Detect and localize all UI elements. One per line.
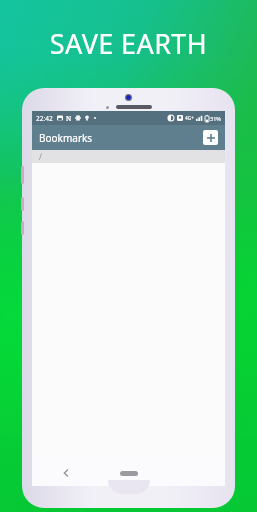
button[interactable]: Back <box>58 465 74 481</box>
staticText: 31% <box>210 115 221 122</box>
button[interactable]: Add bookmark <box>203 130 218 145</box>
staticText: 22:42 <box>36 114 53 123</box>
staticText: / <box>39 151 42 162</box>
staticText: N <box>66 114 72 123</box>
staticText: Bookmarks <box>39 131 93 145</box>
button[interactable]: Home <box>117 467 141 479</box>
staticText: SAVE EARTH <box>0 25 257 62</box>
staticText: 4G+ <box>185 115 194 122</box>
